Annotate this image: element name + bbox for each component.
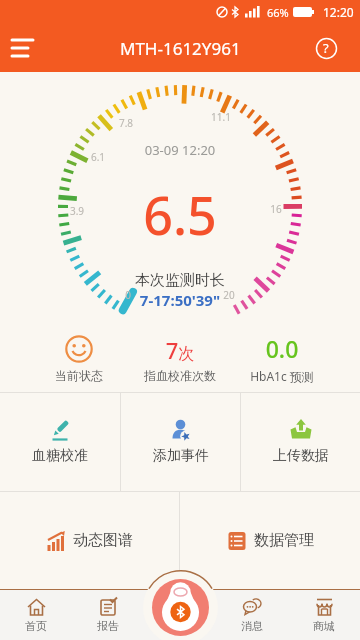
staticText: 03-09 12:20 <box>0 141 360 159</box>
staticText: 上传数据 <box>273 447 329 465</box>
staticText: 添加事件 <box>153 447 209 465</box>
staticText: 动态图谱 <box>73 531 133 550</box>
staticText: 7.8 <box>106 116 146 130</box>
button[interactable]: 添加事件 <box>121 393 240 491</box>
staticText: 7次 <box>0 335 360 365</box>
button[interactable]: 消息 <box>216 590 288 640</box>
button[interactable]: 数据管理 <box>180 492 360 589</box>
staticText: 20 <box>209 288 249 302</box>
staticText: 6.1 <box>78 150 118 164</box>
staticText: 7-17:50'39" <box>0 290 360 310</box>
button[interactable]: 上传数据 <box>241 393 360 491</box>
button[interactable]: 动态图谱 <box>0 492 179 589</box>
button[interactable]: 报告 <box>72 590 144 640</box>
staticText: 0 <box>108 288 148 302</box>
staticText: 当前状态 <box>19 368 139 383</box>
staticText: 商城 <box>313 619 335 633</box>
staticText: 本次监测时长 <box>0 271 360 290</box>
staticText: 3.9 <box>57 204 97 218</box>
staticText: 11.1 <box>201 110 241 124</box>
staticText: 首页 <box>25 619 47 633</box>
staticText: 66% <box>267 5 289 20</box>
staticText: 报告 <box>97 619 119 633</box>
staticText: ? <box>323 39 329 57</box>
button[interactable]: ? <box>314 36 338 60</box>
button[interactable] <box>143 570 218 640</box>
staticText: HbA1c 预测 <box>222 368 342 384</box>
staticText: 血糖校准 <box>32 447 88 465</box>
staticText: 消息 <box>241 619 263 633</box>
staticText: 16 <box>256 202 296 216</box>
button[interactable]: 商城 <box>288 590 360 640</box>
staticText: MTH-1612Y961 <box>120 37 241 60</box>
button[interactable]: 血糖校准 <box>0 393 120 491</box>
staticText: 0.0 <box>222 333 342 364</box>
staticText: 6.5 <box>0 179 360 250</box>
staticText: 数据管理 <box>254 531 314 550</box>
button[interactable]: 首页 <box>0 590 72 640</box>
staticText: 指血校准次数 <box>0 368 360 383</box>
staticText: 12:20 <box>323 4 354 20</box>
button[interactable] <box>0 24 48 72</box>
